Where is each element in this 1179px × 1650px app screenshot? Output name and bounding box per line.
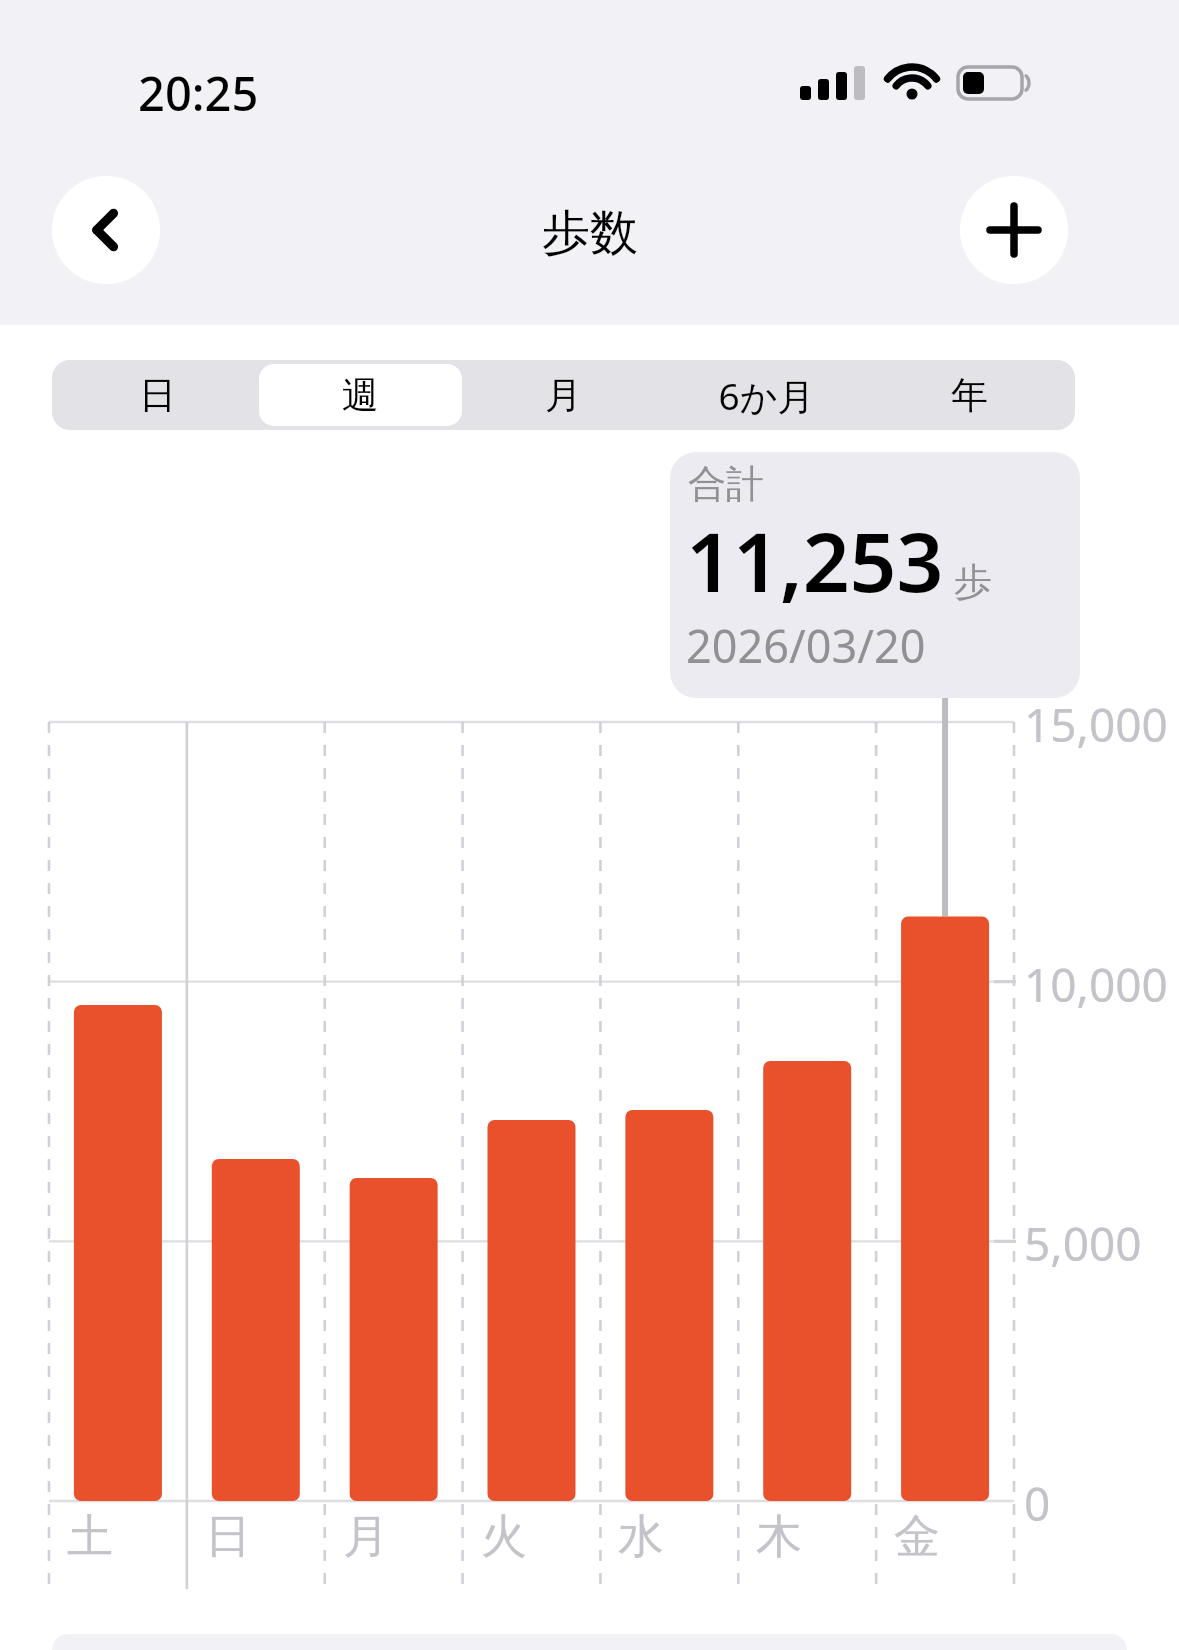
button[interactable]: 年 <box>868 364 1071 426</box>
button[interactable]: 追加 <box>960 176 1068 284</box>
button[interactable]: 週 <box>259 364 462 426</box>
staticText: 土 <box>67 1508 113 1566</box>
staticText: 日 <box>205 1508 251 1566</box>
staticText: 週 <box>342 372 379 419</box>
staticText: 20:25 <box>138 61 259 125</box>
staticText: 10,000 <box>1024 953 1168 1016</box>
staticText: 5,000 <box>1024 1212 1142 1275</box>
button[interactable]: 6か月 <box>665 364 868 426</box>
staticText: 歩数 <box>542 203 638 263</box>
staticText: 火 <box>481 1508 527 1566</box>
button[interactable]: 戻る <box>52 176 160 284</box>
staticText: 日 <box>139 372 176 419</box>
staticText: 水 <box>618 1508 664 1566</box>
staticText: 年 <box>951 372 988 419</box>
staticText: 月 <box>343 1508 389 1566</box>
staticText: 歩 <box>954 558 992 606</box>
staticText: 15,000 <box>1024 693 1168 756</box>
staticText: 合計 <box>688 460 764 508</box>
staticText: 2026/03/20 <box>686 615 926 676</box>
staticText: 0 <box>1024 1472 1051 1535</box>
button[interactable]: 合計 <box>670 452 1080 698</box>
staticText: 木 <box>756 1508 802 1566</box>
staticText: 月 <box>545 372 582 419</box>
button[interactable]: 日 <box>56 364 259 426</box>
staticText: 金 <box>894 1508 940 1566</box>
staticText: 6か月 <box>718 370 815 421</box>
button[interactable]: 月 <box>462 364 665 426</box>
staticText: 11,253 <box>686 504 944 616</box>
